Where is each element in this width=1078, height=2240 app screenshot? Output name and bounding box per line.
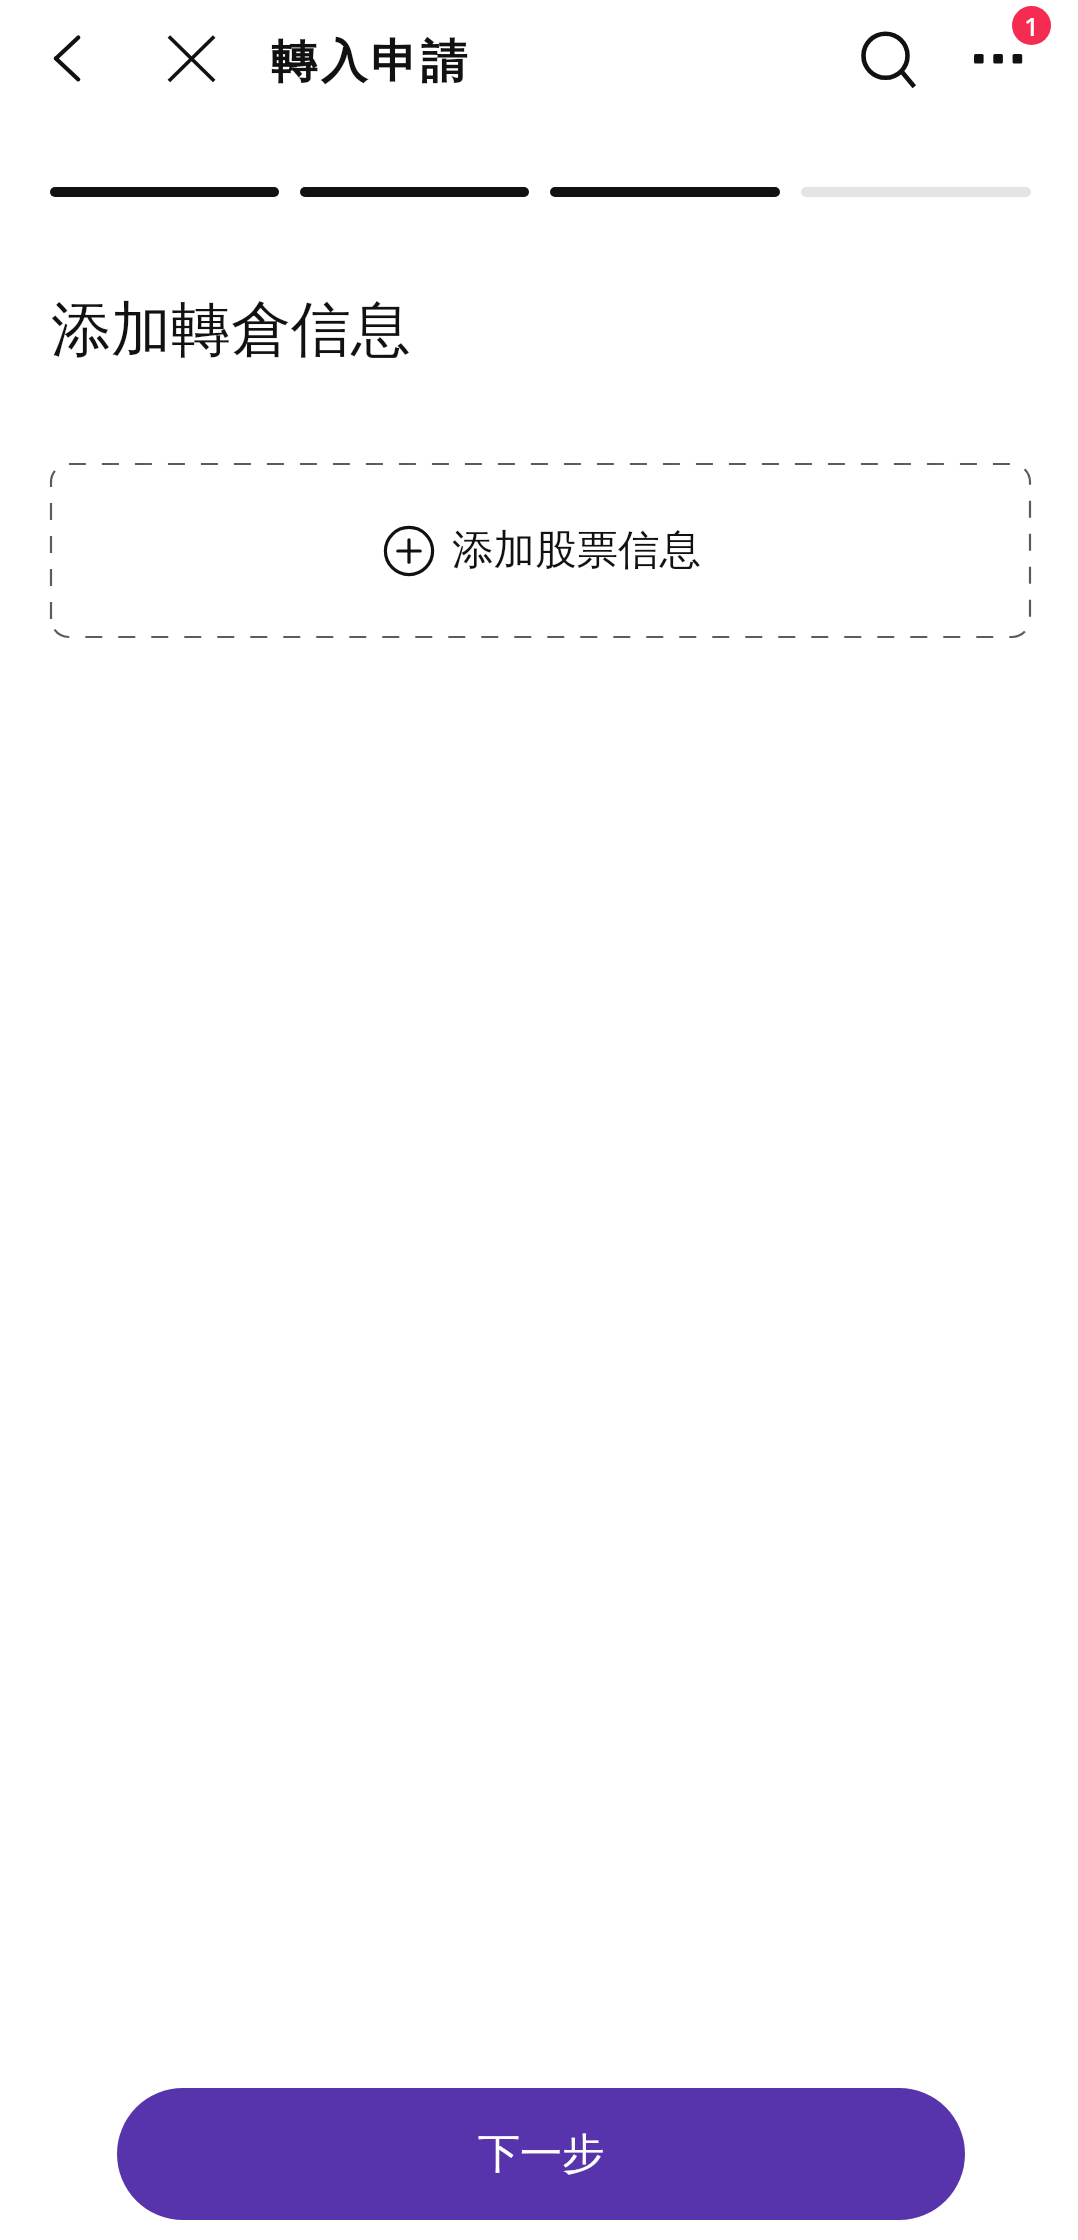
staticText: 1 <box>1024 8 1039 43</box>
staticText: 添加轉倉信息 <box>51 292 411 368</box>
staticText: 添加股票信息 <box>452 524 701 576</box>
staticText: 轉入申請 <box>269 33 469 91</box>
staticText: 下一步 <box>478 2128 604 2181</box>
button[interactable]: More options <box>960 18 1040 98</box>
button[interactable]: Back <box>28 14 108 94</box>
button[interactable]: 添加股票信息 <box>50 463 1031 638</box>
button[interactable]: 下一步 <box>117 2088 965 2220</box>
button[interactable]: Close <box>151 19 231 99</box>
button[interactable]: Search <box>845 15 927 97</box>
